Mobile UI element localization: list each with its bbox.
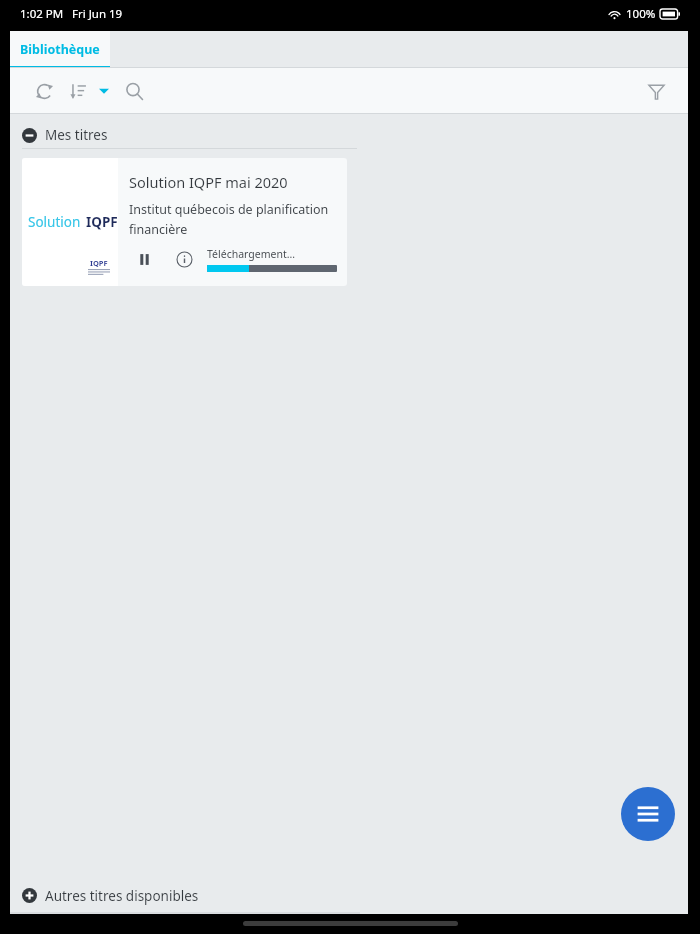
button[interactable]: Bibliothèque	[10, 31, 110, 68]
button[interactable]: Search	[118, 75, 150, 107]
button[interactable]: Mes titres	[22, 122, 676, 148]
button[interactable]: Pause	[129, 244, 159, 274]
button[interactable]: Sync	[28, 75, 60, 107]
staticText: Solution	[28, 213, 81, 231]
staticText: Institut québecois de planification fina…	[129, 201, 339, 238]
button[interactable]: Autres titres disponibles	[22, 877, 688, 914]
staticText: Fri Jun 19	[72, 6, 123, 22]
staticText: 100%	[626, 6, 656, 22]
button[interactable]: Sort options	[94, 81, 114, 101]
button[interactable]: Sort	[62, 75, 94, 107]
staticText: 1:02 PM	[20, 6, 64, 22]
button[interactable]: Menu	[621, 787, 675, 841]
staticText: Téléchargement...	[207, 247, 296, 261]
staticText: Mes titres	[45, 126, 108, 144]
staticText: IQPF	[86, 213, 118, 231]
button[interactable]: Information	[169, 244, 199, 274]
staticText: Solution IQPF mai 2020	[129, 172, 288, 192]
button[interactable]: Filter	[640, 75, 672, 107]
staticText: Autres titres disponibles	[45, 887, 199, 905]
staticText: IQPF	[90, 258, 108, 268]
button[interactable]: Solution	[22, 158, 347, 286]
staticText: Bibliothèque	[20, 41, 100, 58]
